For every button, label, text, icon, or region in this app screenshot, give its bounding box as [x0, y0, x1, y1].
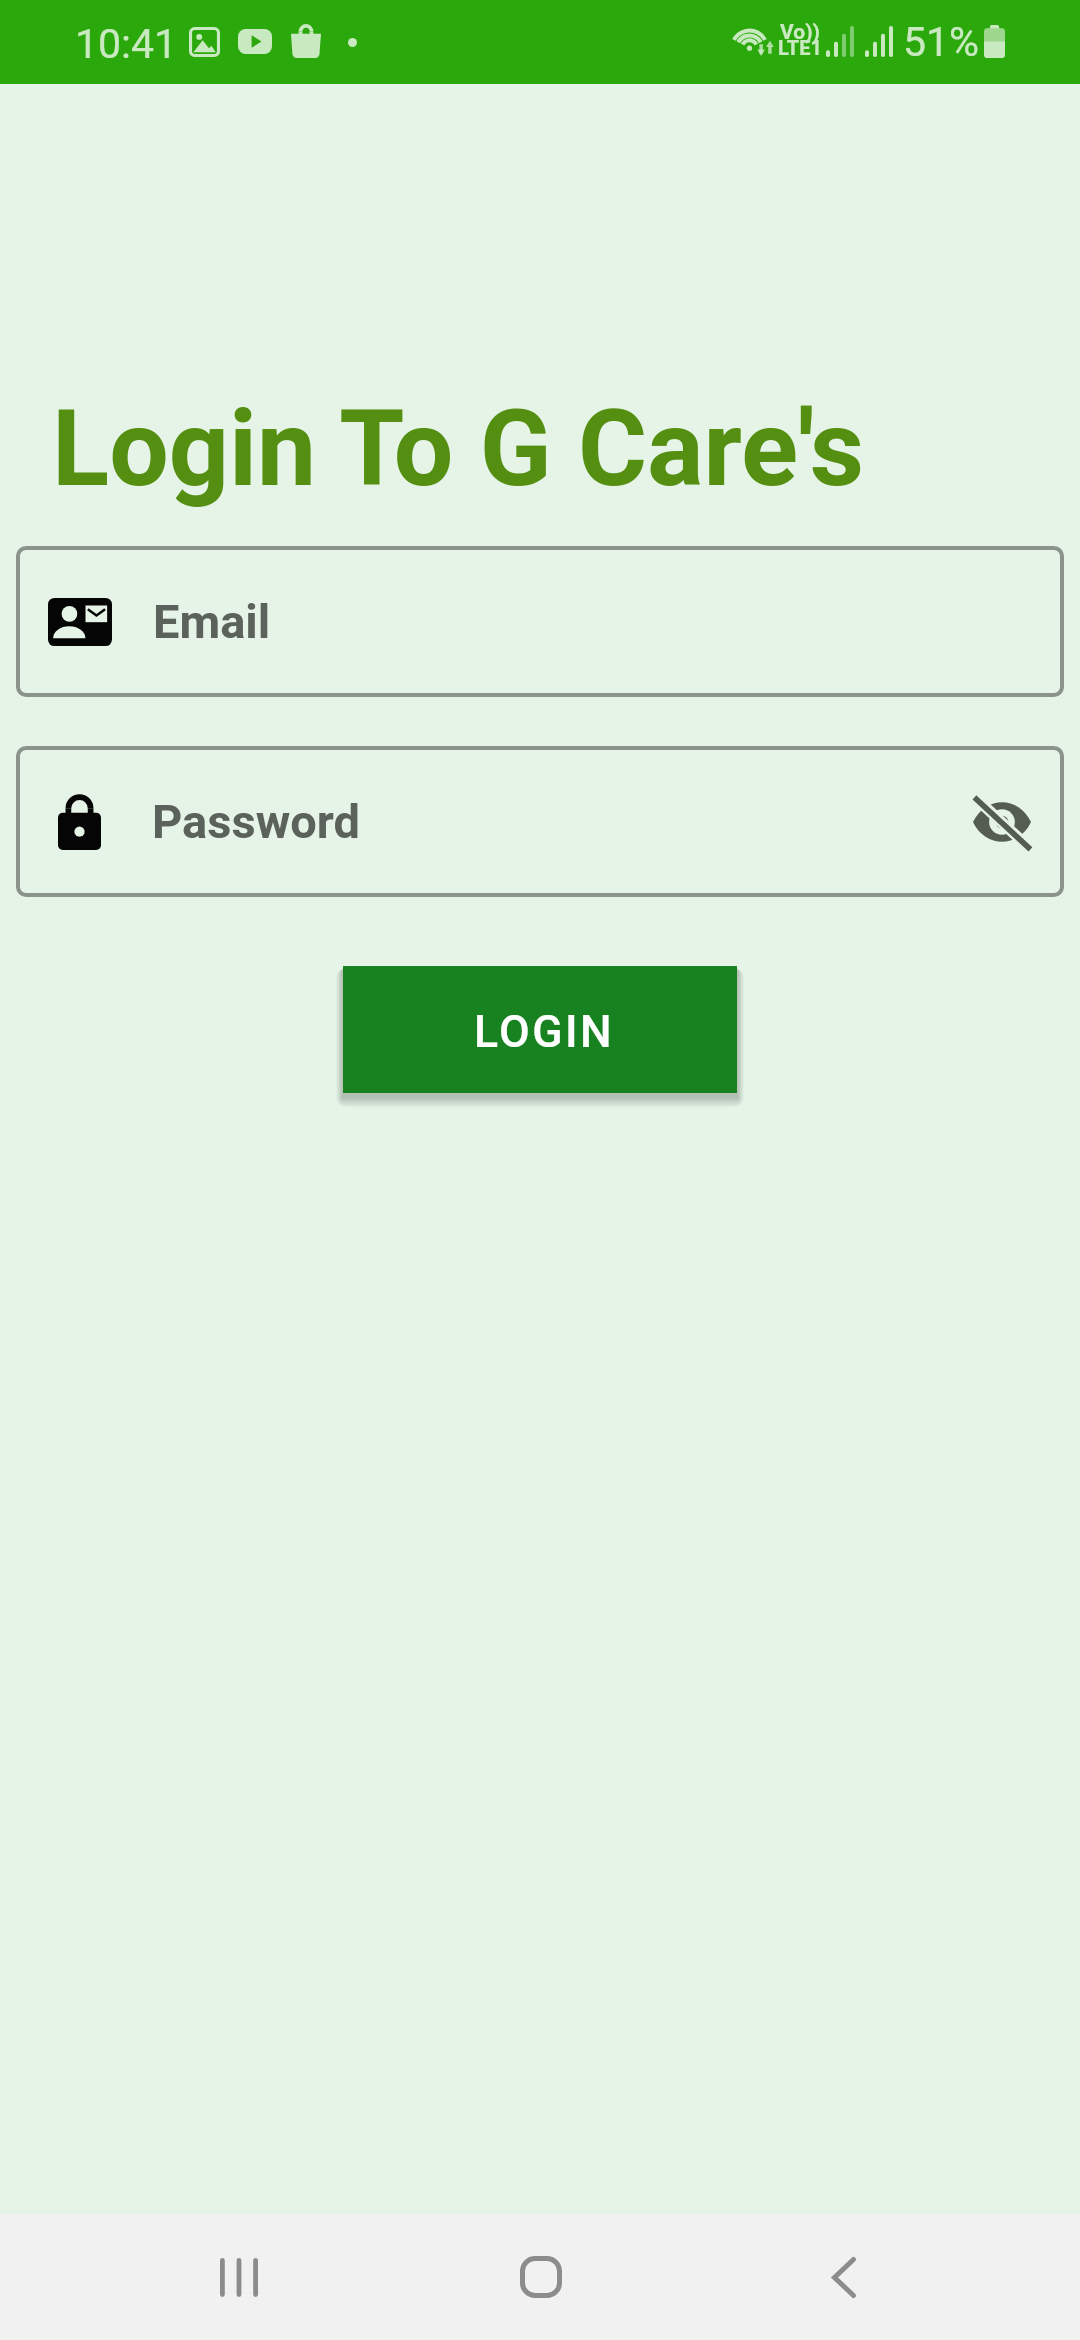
button[interactable]: Back [785, 2218, 903, 2336]
staticText: Email [153, 594, 271, 649]
staticText: LTE1 [778, 36, 822, 59]
button[interactable]: Home [482, 2218, 600, 2336]
staticText: 51% [903, 18, 980, 66]
button[interactable]: Password [16, 746, 1064, 897]
staticText: 10:41 [75, 20, 178, 68]
button[interactable]: Recents [180, 2218, 298, 2336]
button[interactable]: Email [16, 546, 1064, 697]
staticText: LOGIN [474, 1006, 614, 1058]
staticText: Login To G Care's [52, 387, 865, 511]
staticText: Password [152, 794, 361, 849]
staticText: Vo)) [780, 20, 820, 45]
button[interactable]: LOGIN [343, 966, 737, 1093]
button[interactable]: Toggle password visibility [972, 790, 1036, 854]
